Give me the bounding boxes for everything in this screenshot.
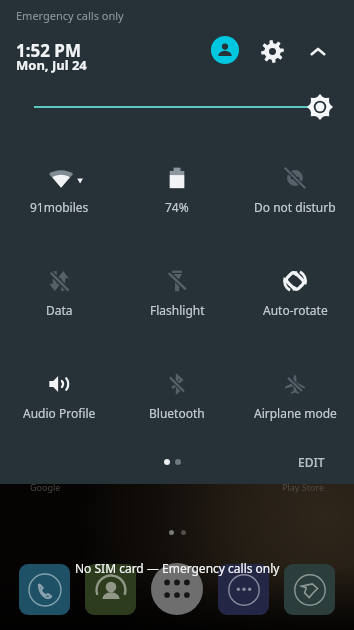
button[interactable]: All apps (151, 563, 203, 615)
button[interactable]: Flashlight (118, 248, 236, 351)
staticText: Auto-rotate (263, 302, 328, 318)
button[interactable]: Data (0, 248, 118, 351)
button[interactable]: Contacts (85, 564, 136, 615)
staticText: 1:52 PM (16, 39, 81, 62)
button[interactable]: Auto-rotate (236, 248, 354, 351)
staticText: Bluetooth (149, 405, 205, 421)
button[interactable]: 74% (118, 145, 236, 248)
staticText: Emergency calls only (16, 8, 124, 23)
button[interactable]: Bluetooth (118, 351, 236, 454)
staticText: EDIT (298, 454, 325, 470)
staticText: Mon, Jul 24 (16, 56, 87, 74)
button[interactable]: Collapse (298, 32, 338, 72)
button[interactable]: Audio Profile (0, 351, 118, 454)
staticText: Airplane mode (254, 405, 337, 421)
staticText: Flashlight (150, 302, 205, 318)
button[interactable]: Do not disturb (236, 145, 354, 248)
button[interactable]: Brightness (0, 89, 354, 125)
staticText: 91mobiles (30, 199, 89, 215)
staticText: No SIM card — Emergency calls only (75, 560, 280, 576)
button[interactable]: 91mobiles (0, 145, 118, 248)
button[interactable]: Settings (252, 31, 292, 71)
staticText: Play Store (282, 481, 324, 493)
button[interactable]: Messages (218, 564, 269, 615)
staticText: Google (30, 481, 61, 493)
staticText: Data (46, 302, 73, 318)
staticText: Do not disturb (254, 199, 336, 215)
button[interactable]: EDIT (286, 448, 337, 476)
button[interactable]: Browser (284, 564, 335, 615)
button[interactable]: Airplane mode (236, 351, 354, 454)
button[interactable]: User profile (205, 30, 245, 70)
staticText: Audio Profile (23, 405, 96, 421)
staticText: 74% (165, 199, 189, 215)
button[interactable]: Phone (19, 564, 70, 615)
